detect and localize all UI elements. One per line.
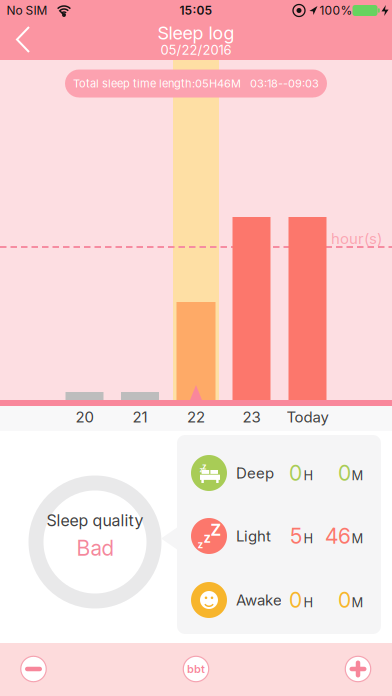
staticText: Z	[210, 521, 221, 539]
staticText: 0	[338, 461, 351, 485]
staticText: H	[303, 531, 313, 546]
staticText: z	[197, 539, 203, 550]
button[interactable]: Back	[5, 15, 41, 64]
staticText: Deep	[236, 464, 274, 482]
staticText: Sleep log	[157, 22, 234, 44]
button[interactable]: Remove	[21, 656, 46, 682]
staticText: Total sleep time length:05H46M 03:18--09…	[73, 77, 319, 90]
staticText: Light	[236, 527, 271, 545]
staticText: Awake	[236, 591, 282, 609]
staticText: 22	[187, 408, 205, 426]
staticText: Today	[286, 408, 328, 426]
staticText: Bad	[76, 536, 113, 560]
staticText: M	[351, 531, 363, 546]
staticText: Sleep quality	[46, 511, 143, 530]
staticText: H	[303, 468, 313, 483]
staticText: 0	[338, 588, 351, 612]
staticText: No SIM	[6, 3, 47, 18]
button[interactable]: Add	[345, 656, 371, 682]
staticText: 0	[289, 588, 302, 612]
staticText: z	[199, 466, 202, 474]
staticText: z	[202, 462, 207, 471]
button[interactable]: bbt	[183, 656, 209, 682]
staticText: 20	[75, 408, 93, 426]
staticText: 23	[242, 408, 260, 426]
staticText: 21	[132, 408, 147, 426]
staticText: M	[351, 595, 363, 610]
staticText: 100%	[319, 3, 352, 18]
staticText: 5	[290, 524, 302, 548]
staticText: M	[351, 468, 363, 483]
staticText: 15:05	[179, 3, 212, 18]
staticText: 46	[325, 524, 351, 548]
staticText: H	[303, 595, 313, 610]
staticText: z	[203, 530, 210, 546]
staticText: bbt	[187, 662, 205, 675]
staticText: 0	[289, 461, 302, 485]
staticText: hour(s)	[331, 230, 382, 247]
staticText: 05/22/2016	[160, 42, 231, 58]
